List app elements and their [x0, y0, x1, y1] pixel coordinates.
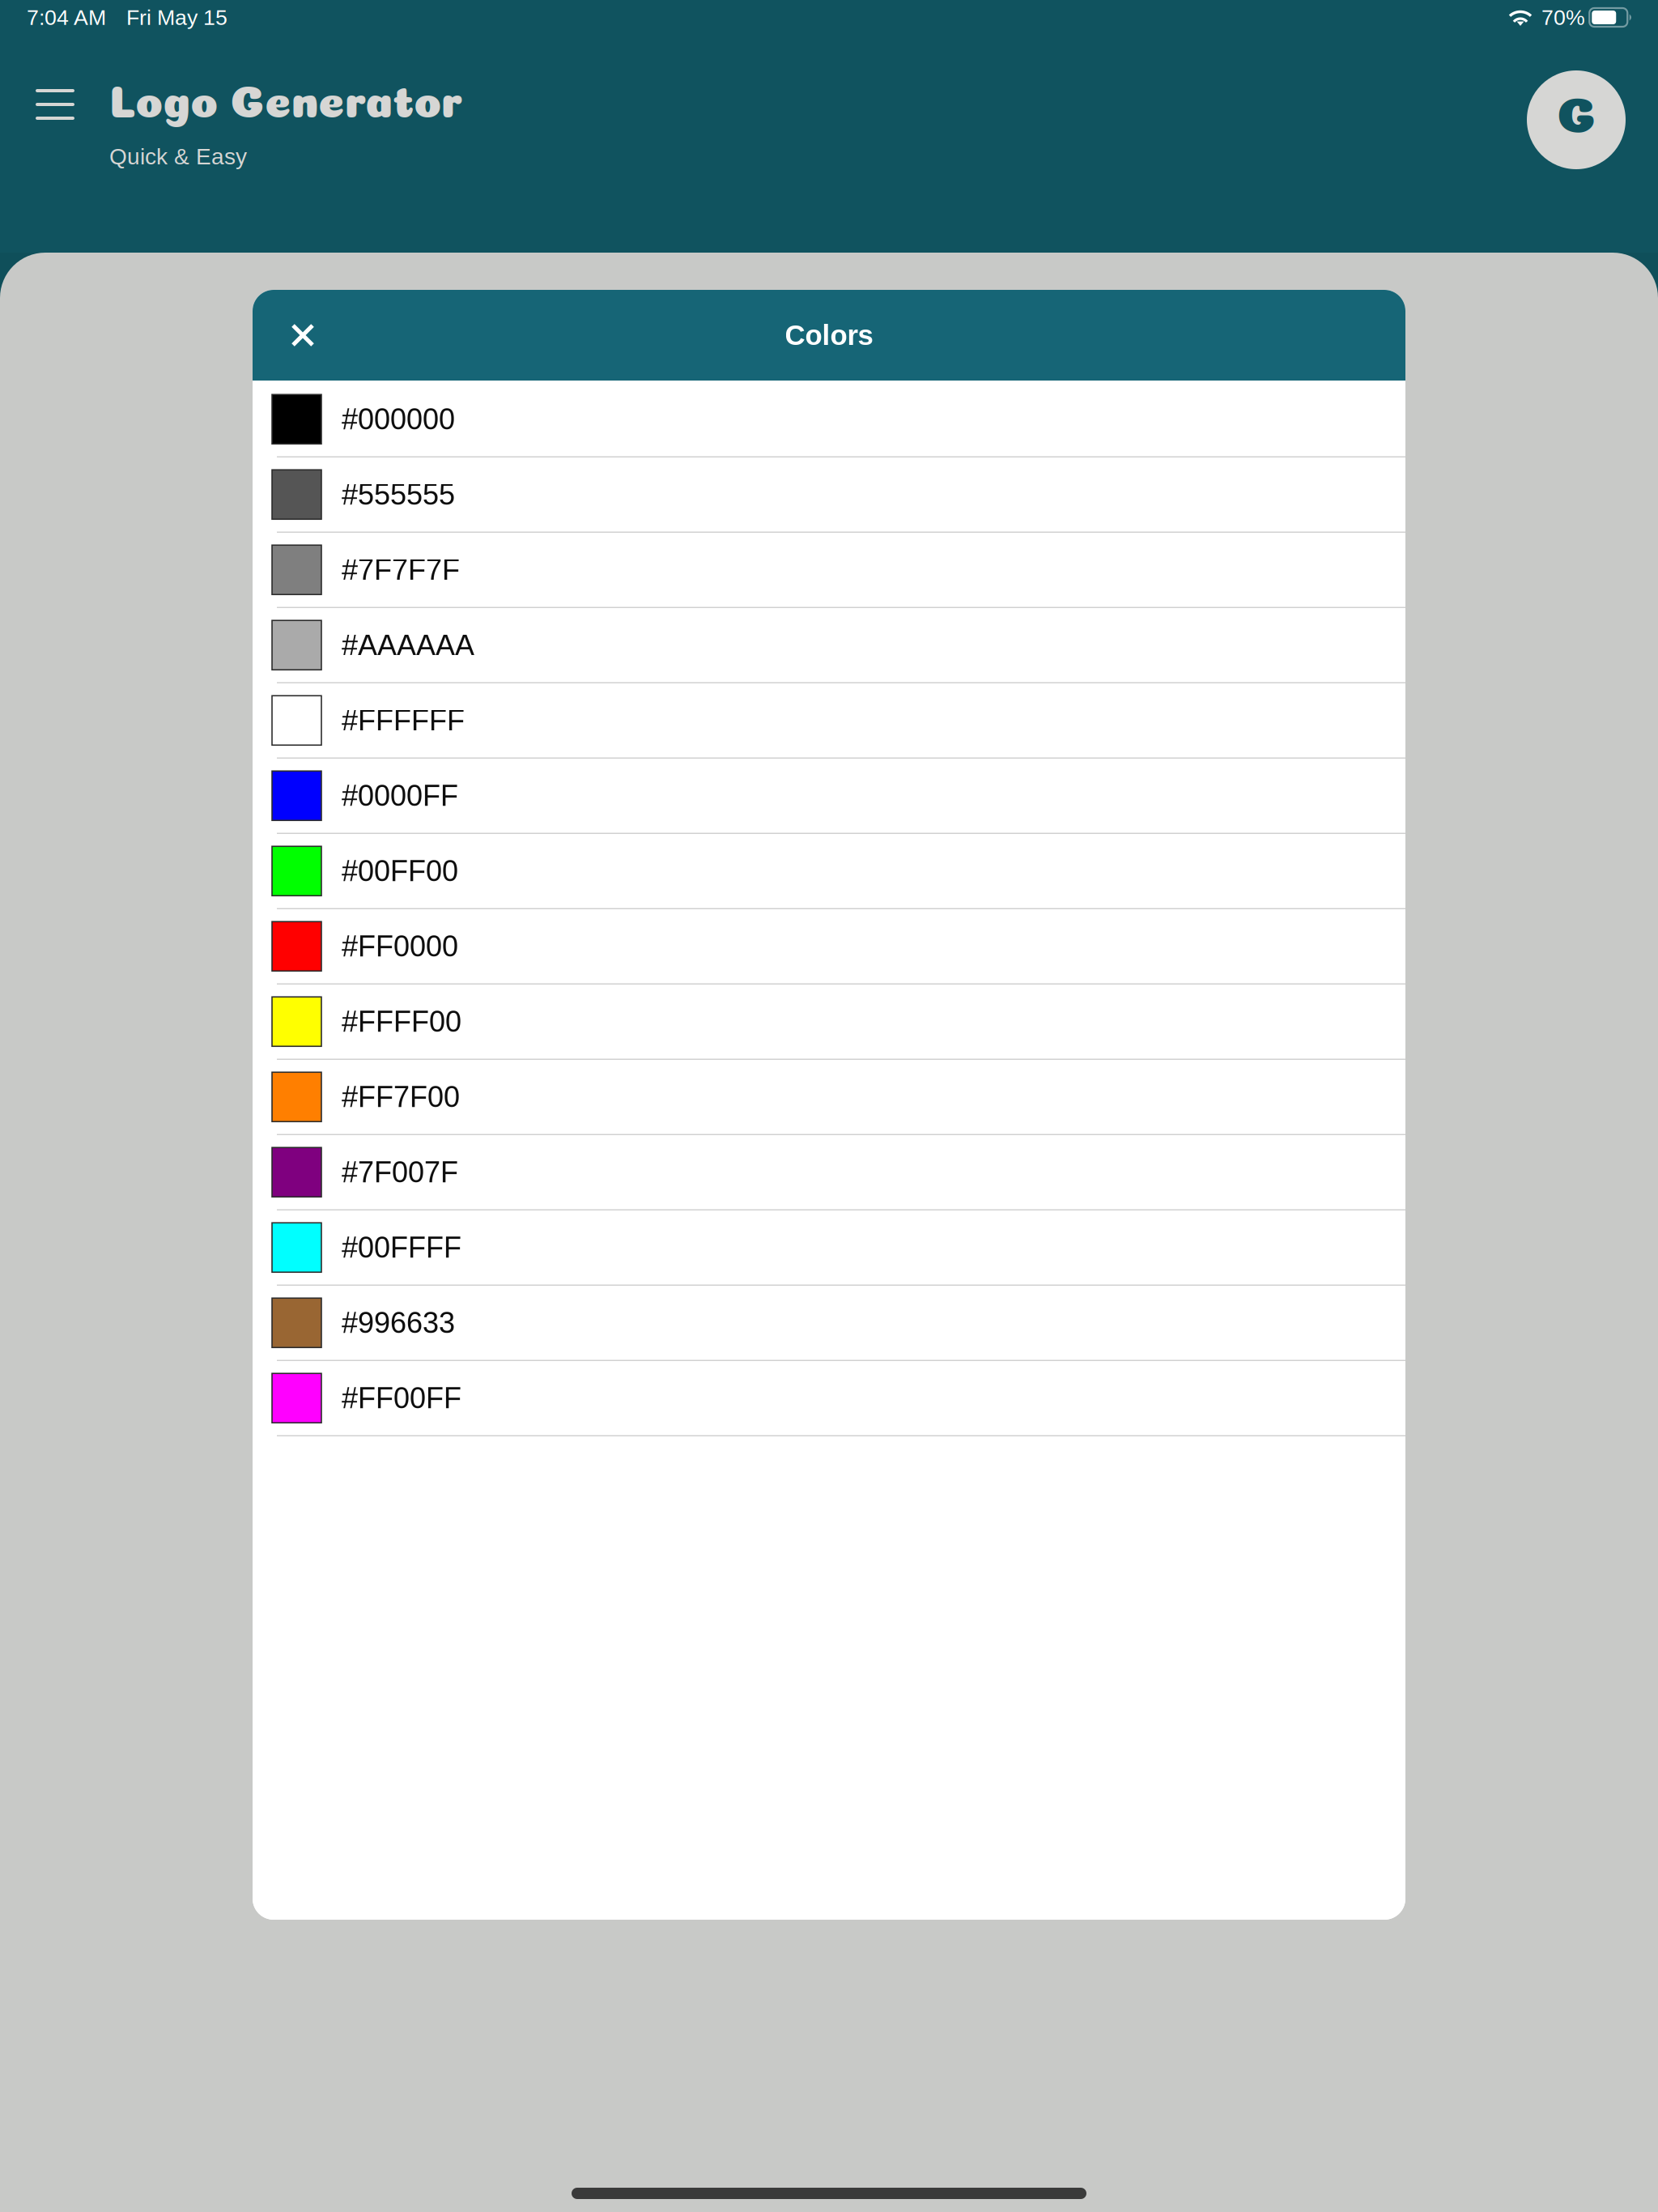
staticText: 7:04 AM — [27, 5, 106, 29]
button[interactable]: #AAAAAA — [253, 608, 1405, 683]
button[interactable]: #7F007F — [253, 1135, 1405, 1210]
button[interactable]: #7F7F7F — [253, 533, 1405, 608]
staticText: 70% — [1541, 5, 1585, 29]
button[interactable]: #555555 — [253, 457, 1405, 533]
staticText: #FFFF00 — [342, 1005, 461, 1038]
staticText: #996633 — [342, 1306, 455, 1339]
button[interactable]: #FFFFFF — [253, 683, 1405, 759]
button[interactable]: Menu — [36, 40, 74, 247]
staticText: #AAAAAA — [342, 629, 474, 661]
staticText: #FFFFFF — [342, 704, 465, 737]
button[interactable]: Close — [278, 310, 328, 360]
button[interactable]: Account — [1527, 40, 1626, 247]
staticText: #FF7F00 — [342, 1081, 460, 1113]
button[interactable]: #FFFF00 — [253, 985, 1405, 1060]
button[interactable]: #996633 — [253, 1286, 1405, 1361]
staticText: Quick & Easy — [109, 144, 247, 169]
staticText: Logo Generator — [109, 84, 462, 128]
staticText: G — [1556, 94, 1596, 145]
button[interactable]: #000000 — [253, 382, 1405, 457]
staticText: #FF0000 — [342, 930, 458, 963]
staticText: Fri May 15 — [126, 5, 227, 29]
staticText: #0000FF — [342, 779, 458, 812]
button[interactable]: #FF7F00 — [253, 1060, 1405, 1135]
staticText: #00FF00 — [342, 855, 458, 887]
button[interactable]: #00FF00 — [253, 834, 1405, 909]
button[interactable]: #0000FF — [253, 759, 1405, 834]
staticText: #7F007F — [342, 1156, 458, 1188]
staticText: #555555 — [342, 478, 455, 511]
staticText: Colors — [785, 319, 873, 351]
button[interactable]: #FF00FF — [253, 1361, 1405, 1436]
button[interactable]: #00FFFF — [253, 1210, 1405, 1286]
staticText: #00FFFF — [342, 1231, 461, 1264]
staticText: #7F7F7F — [342, 553, 460, 586]
button[interactable]: #FF0000 — [253, 909, 1405, 985]
staticText: #FF00FF — [342, 1382, 461, 1414]
staticText: #000000 — [342, 403, 455, 435]
